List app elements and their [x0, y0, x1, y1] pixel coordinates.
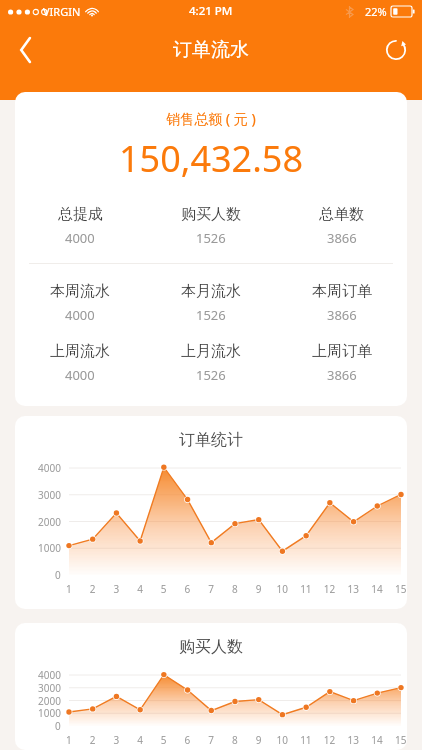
staticText: 22%: [365, 4, 387, 19]
staticText: 上月流水: [181, 342, 241, 361]
staticText: 150,432.58: [15, 134, 407, 183]
staticText: 购买人数: [181, 205, 241, 224]
staticText: 4:21 PM: [189, 3, 233, 19]
staticText: 3866: [327, 306, 357, 324]
button[interactable]: 本周流水: [15, 282, 145, 324]
staticText: 4000: [65, 229, 95, 247]
staticText: 总提成: [58, 205, 103, 224]
staticText: 1526: [196, 306, 226, 324]
staticText: 订单流水: [173, 38, 249, 62]
staticText: 3866: [327, 366, 357, 384]
button[interactable]: 总单数: [276, 205, 407, 247]
button[interactable]: 购买人数: [145, 205, 276, 247]
staticText: VIRGIN: [43, 4, 81, 19]
staticText: 1526: [196, 229, 226, 247]
button[interactable]: 上周订单: [276, 342, 407, 384]
staticText: 本周订单: [312, 282, 372, 301]
button[interactable]: 上周流水: [15, 342, 145, 384]
staticText: 4000: [65, 366, 95, 384]
button[interactable]: 上月流水: [145, 342, 276, 384]
staticText: 本月流水: [181, 282, 241, 301]
button[interactable]: 本周订单: [276, 282, 407, 324]
staticText: 购买人数: [15, 637, 407, 657]
staticText: 3866: [327, 229, 357, 247]
staticText: 上周订单: [312, 342, 372, 361]
staticText: 本周流水: [50, 282, 110, 301]
staticText: 销售总额 ( 元 ): [15, 109, 407, 128]
button[interactable]: 总提成: [15, 205, 145, 247]
staticText: 上周流水: [50, 342, 110, 361]
staticText: 订单统计: [15, 430, 407, 450]
staticText: 1526: [196, 366, 226, 384]
staticText: 总单数: [319, 205, 364, 224]
button[interactable]: Back: [0, 24, 52, 76]
button[interactable]: 本月流水: [145, 282, 276, 324]
staticText: 4000: [65, 306, 95, 324]
button[interactable]: Refresh: [370, 24, 422, 76]
